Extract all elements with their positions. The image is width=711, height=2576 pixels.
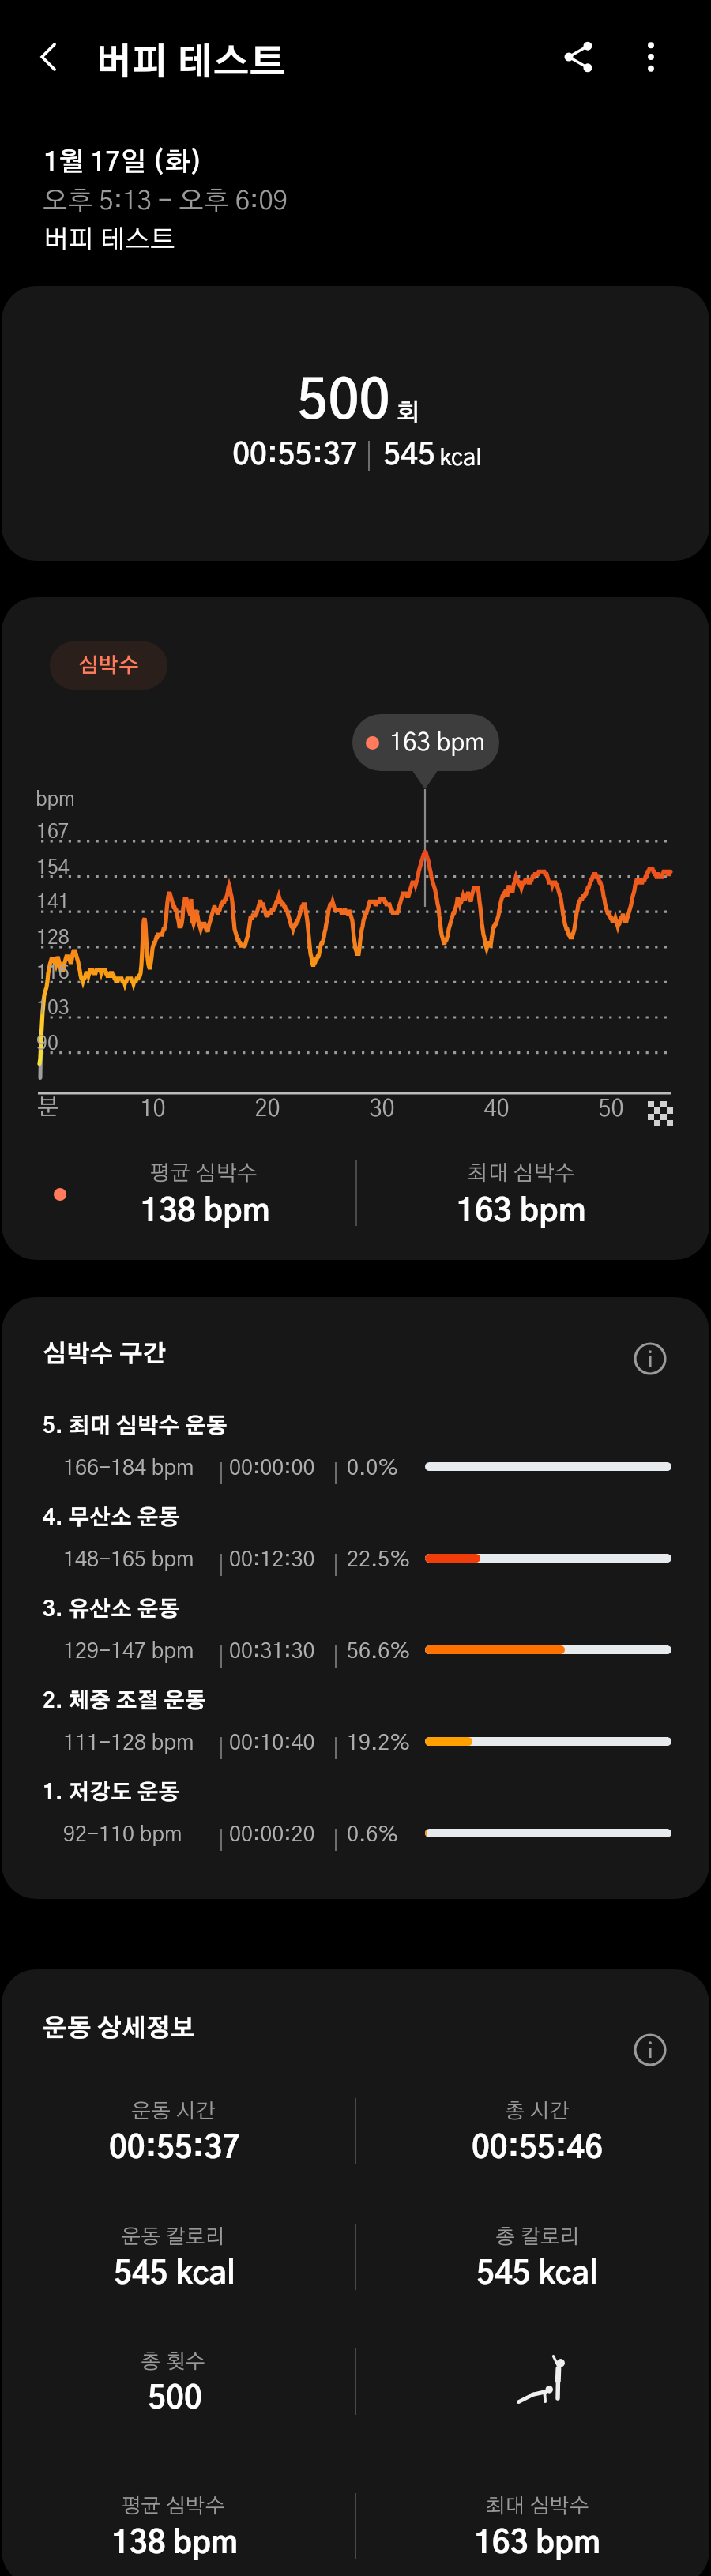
staticText: 141 [36,893,70,912]
staticText: 0.6% [347,1824,399,1845]
staticText: 평균 심박수 [149,1163,258,1184]
staticText: 545 kcal [114,2259,235,2290]
button[interactable]: 5. 최대 심박수 운동 [2,1416,709,1507]
staticText: 10 [140,1098,166,1121]
staticText: 128 [36,928,70,948]
staticText: 최대 심박수 [467,1163,575,1184]
staticText: 138 bpm [140,1196,270,1228]
staticText: 4. 무산소 운동 [43,1507,180,1529]
staticText: 총 시간 [505,2101,570,2122]
staticText: 56.6% [347,1641,411,1662]
staticText: 163 bpm [474,2529,600,2559]
staticText: 148-165 bpm [63,1549,194,1570]
staticText: 운동 상세정보 [43,2017,195,2041]
staticText: 500 [297,376,390,430]
staticText: 분 [37,1096,59,1119]
staticText: 30 [369,1098,395,1121]
staticText: 총 횟수 [141,2352,205,2372]
staticText: 90 [36,1034,58,1054]
staticText: 00:12:30 [229,1549,315,1570]
staticText: 0.0% [347,1457,399,1479]
staticText: 111-128 bpm [63,1732,194,1754]
staticText: 회 [396,401,420,425]
staticText: 163 bpm [389,731,486,755]
staticText: 3. 유산소 운동 [43,1599,180,1620]
staticText: 운동 시간 [131,2101,216,2122]
staticText: 5. 최대 심박수 운동 [43,1416,228,1437]
staticText: 166-184 bpm [63,1457,194,1479]
button[interactable]: 1. 저강도 운동 [2,1782,709,1874]
staticText: 00:31:30 [229,1641,315,1662]
staticText: 138 bpm [111,2529,238,2559]
staticText: 2. 체중 조절 운동 [43,1690,206,1712]
button[interactable]: Information [628,1337,672,1381]
staticText: 총 칼로리 [495,2227,580,2247]
button[interactable]: 2. 체중 조절 운동 [2,1690,709,1782]
staticText: 버피 테스트 [96,45,286,81]
button[interactable]: Information [628,2028,672,2072]
button[interactable]: More options [618,24,684,90]
staticText: 심박수 [78,656,139,676]
staticText: 심박수 구간 [43,1343,167,1367]
staticText: 116 [36,963,70,983]
staticText: 00:55:46 [472,2134,603,2164]
staticText: 545 kcal [476,2259,598,2290]
staticText: 50 [598,1098,624,1121]
staticText: kcal [439,447,482,470]
button[interactable]: Back [17,25,81,88]
button[interactable]: Share [545,24,611,90]
staticText: 1월 17일 (화) [43,150,202,176]
staticText: 500 [148,2384,202,2415]
staticText: 40 [483,1098,510,1121]
staticText: 오후 5:13 - 오후 6:09 [43,189,288,215]
staticText: 167 [36,822,70,842]
staticText: 00:55:37 [109,2134,240,2164]
staticText: bpm [36,790,75,810]
staticText: 00:10:40 [229,1732,315,1754]
staticText: 20 [254,1098,280,1121]
staticText: 평균 심박수 [121,2496,225,2517]
staticText: 00:00:00 [229,1457,315,1479]
staticText: 545 [383,441,435,471]
staticText: 103 [36,998,70,1018]
staticText: 00:55:37 [232,441,358,471]
button[interactable]: 4. 무산소 운동 [2,1507,709,1599]
button[interactable]: 3. 유산소 운동 [2,1599,709,1690]
staticText: 버피 테스트 [43,228,175,254]
staticText: 154 [36,858,70,878]
staticText: 1. 저강도 운동 [43,1782,180,1803]
staticText: 운동 칼로리 [121,2227,225,2247]
staticText: 최대 심박수 [485,2496,589,2517]
staticText: 19.2% [347,1732,411,1754]
staticText: 00:00:20 [229,1824,315,1845]
staticText: 22.5% [347,1549,411,1570]
staticText: 163 bpm [456,1196,586,1228]
staticText: 129-147 bpm [63,1641,194,1662]
staticText: 92-110 bpm [63,1824,182,1845]
button[interactable]: 심박수 [50,641,167,690]
